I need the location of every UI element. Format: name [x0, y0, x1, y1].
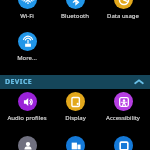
- staticText: DEVICE: [5, 77, 33, 87]
- staticText: Accessibility: [106, 114, 140, 122]
- button[interactable]: More...: [6, 32, 48, 62]
- staticText: Audio profiles: [7, 114, 47, 122]
- button[interactable]: Display: [54, 92, 96, 122]
- staticText: Wi-Fi: [20, 12, 34, 20]
- button[interactable]: Bluetooth: [54, 0, 96, 20]
- button[interactable]: Wi-Fi: [6, 0, 48, 20]
- button[interactable]: Data usage: [102, 0, 144, 20]
- staticText: Data usage: [107, 12, 139, 20]
- button[interactable]: apps: [54, 136, 96, 150]
- staticText: Display: [65, 114, 86, 122]
- button[interactable]: Audio profiles: [6, 92, 48, 122]
- staticText: More...: [17, 54, 37, 62]
- button[interactable]: person: [6, 136, 48, 150]
- button[interactable]: storage: [102, 136, 144, 150]
- staticText: Bluetooth: [61, 12, 89, 20]
- button[interactable]: Accessibility: [102, 92, 144, 122]
- button[interactable]: DEVICE: [0, 75, 150, 89]
- other: Collapse section: [133, 76, 145, 88]
